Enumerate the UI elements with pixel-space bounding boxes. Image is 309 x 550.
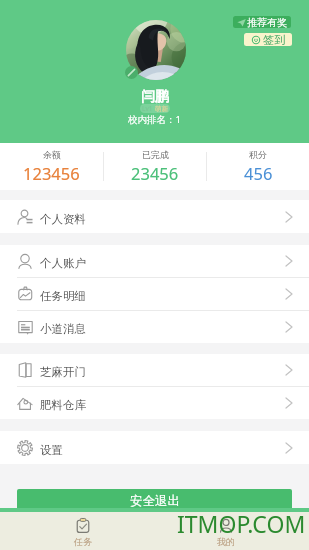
button[interactable]: 任务 [12, 512, 154, 550]
button[interactable]: 推荐有奖 [233, 16, 291, 28]
staticText: 123456 [23, 162, 80, 184]
staticText: 个人账户 [40, 256, 86, 270]
staticText: Lv1 [142, 104, 153, 113]
button[interactable]: 芝麻开门 [0, 354, 309, 386]
button[interactable]: 个人账户 [0, 245, 309, 277]
button[interactable]: Edit avatar [125, 66, 138, 79]
button[interactable]: 我的 [154, 512, 297, 550]
button[interactable]: 小道消息 [0, 311, 309, 343]
button[interactable]: 余额 [0, 143, 103, 190]
staticText: 设置 [40, 443, 63, 457]
button[interactable]: 肥料仓库 [0, 387, 309, 419]
staticText: 萌新 [155, 105, 168, 113]
staticText: 个人资料 [40, 212, 86, 226]
staticText: 23456 [131, 162, 179, 184]
button[interactable]: 签到 [244, 33, 292, 46]
button[interactable]: 个人资料 [0, 200, 309, 233]
staticText: 闫鹏 [141, 88, 169, 106]
staticText: 积分 [249, 149, 267, 160]
staticText: ITMOP.COM [177, 508, 306, 539]
staticText: 456 [244, 162, 273, 184]
staticText: 任务明细 [40, 289, 86, 303]
staticText: 余额 [43, 149, 61, 160]
button[interactable]: 积分 [207, 143, 309, 190]
staticText: 小道消息 [40, 322, 86, 336]
staticText: 芝麻开门 [40, 365, 86, 379]
button[interactable]: 已完成 [104, 143, 206, 190]
staticText: 校内排名：1 [128, 113, 181, 126]
staticText: 肥料仓库 [40, 398, 86, 412]
staticText: 任务 [74, 536, 92, 547]
button[interactable]: 设置 [0, 431, 309, 464]
staticText: 已完成 [142, 149, 169, 160]
staticText: 安全退出 [130, 493, 180, 509]
staticText: 推荐有奖 [247, 16, 287, 28]
staticText: 签到 [263, 33, 285, 46]
button[interactable]: 任务明细 [0, 278, 309, 310]
button[interactable]: 安全退出 [17, 489, 292, 512]
staticText: 我的 [217, 536, 235, 547]
